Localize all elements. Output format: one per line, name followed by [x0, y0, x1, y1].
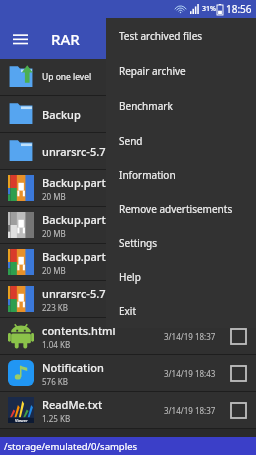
staticText: 3/14/19 18:37	[164, 405, 216, 416]
staticText: Up one level	[42, 71, 92, 83]
button[interactable]: Backup.part	[0, 207, 256, 243]
button[interactable]: Test archived files	[106, 18, 256, 53]
staticText: 3/14/19 18:43	[164, 368, 216, 379]
staticText: Viewer	[15, 418, 28, 423]
staticText: 20 MB	[42, 265, 66, 276]
staticText: ReadMe.txt	[42, 397, 103, 412]
staticText: Backup.part	[42, 249, 106, 264]
staticText: Backup.part	[42, 212, 106, 227]
staticText: 20 MB	[42, 191, 66, 202]
button[interactable]: contents.html	[0, 318, 256, 354]
staticText: Settings	[119, 236, 158, 250]
staticText: RAR	[51, 29, 80, 49]
staticText: 1.25 KB	[42, 413, 71, 424]
button[interactable]: unrarsrc-5.7	[0, 133, 256, 169]
staticText: Backup	[42, 107, 81, 122]
button[interactable]: Backup	[0, 96, 256, 132]
staticText: 223 KB	[42, 302, 68, 313]
staticText: 20 MB	[42, 228, 66, 239]
button[interactable]: Benchmark	[106, 88, 256, 123]
staticText: Send	[119, 134, 143, 148]
staticText: 1.04 KB	[42, 339, 71, 350]
staticText: Notification sound.mp3	[42, 360, 164, 375]
staticText: contents.html	[42, 323, 116, 338]
staticText: 576 KB	[42, 376, 68, 387]
button[interactable]: Backup.part	[0, 244, 256, 280]
staticText: unrarsrc-5.7	[42, 144, 106, 159]
button[interactable]: Select ReadMe.txt	[226, 398, 250, 422]
staticText: 3/14/19 18:37	[164, 331, 216, 342]
button[interactable]: Select contents.html	[226, 324, 250, 348]
button[interactable]: Backup.part	[0, 170, 256, 206]
staticText: 18:56	[226, 2, 252, 16]
button[interactable]: Remove advertisements	[106, 192, 256, 226]
staticText: unrarsrc-5.7	[42, 286, 106, 301]
button[interactable]: Information	[106, 158, 256, 192]
staticText: Benchmark	[119, 99, 173, 113]
button[interactable]: Notification sound.mp3	[0, 355, 256, 391]
staticText: Information	[119, 168, 176, 182]
staticText: Remove advertisements	[119, 202, 233, 216]
button[interactable]: Viewer	[0, 392, 256, 428]
button[interactable]: Select Notification sound.mp3	[226, 361, 250, 385]
staticText: Exit	[119, 304, 137, 318]
button[interactable]: Send	[106, 123, 256, 158]
button[interactable]: Up one level	[0, 59, 256, 95]
staticText: Repair archive	[119, 64, 186, 78]
staticText: Test archived files	[119, 29, 203, 43]
staticText: /storage/emulated/0/samples	[4, 440, 138, 453]
button[interactable]: Settings	[106, 226, 256, 260]
button[interactable]: Help	[106, 260, 256, 294]
button[interactable]: Open navigation drawer	[0, 18, 41, 59]
button[interactable]: Exit	[106, 294, 256, 328]
button[interactable]: Repair archive	[106, 53, 256, 88]
staticText: Backup.part	[42, 175, 106, 190]
staticText: Help	[119, 270, 141, 284]
button[interactable]: unrarsrc-5.7	[0, 281, 256, 317]
staticText: 31%	[202, 4, 216, 14]
